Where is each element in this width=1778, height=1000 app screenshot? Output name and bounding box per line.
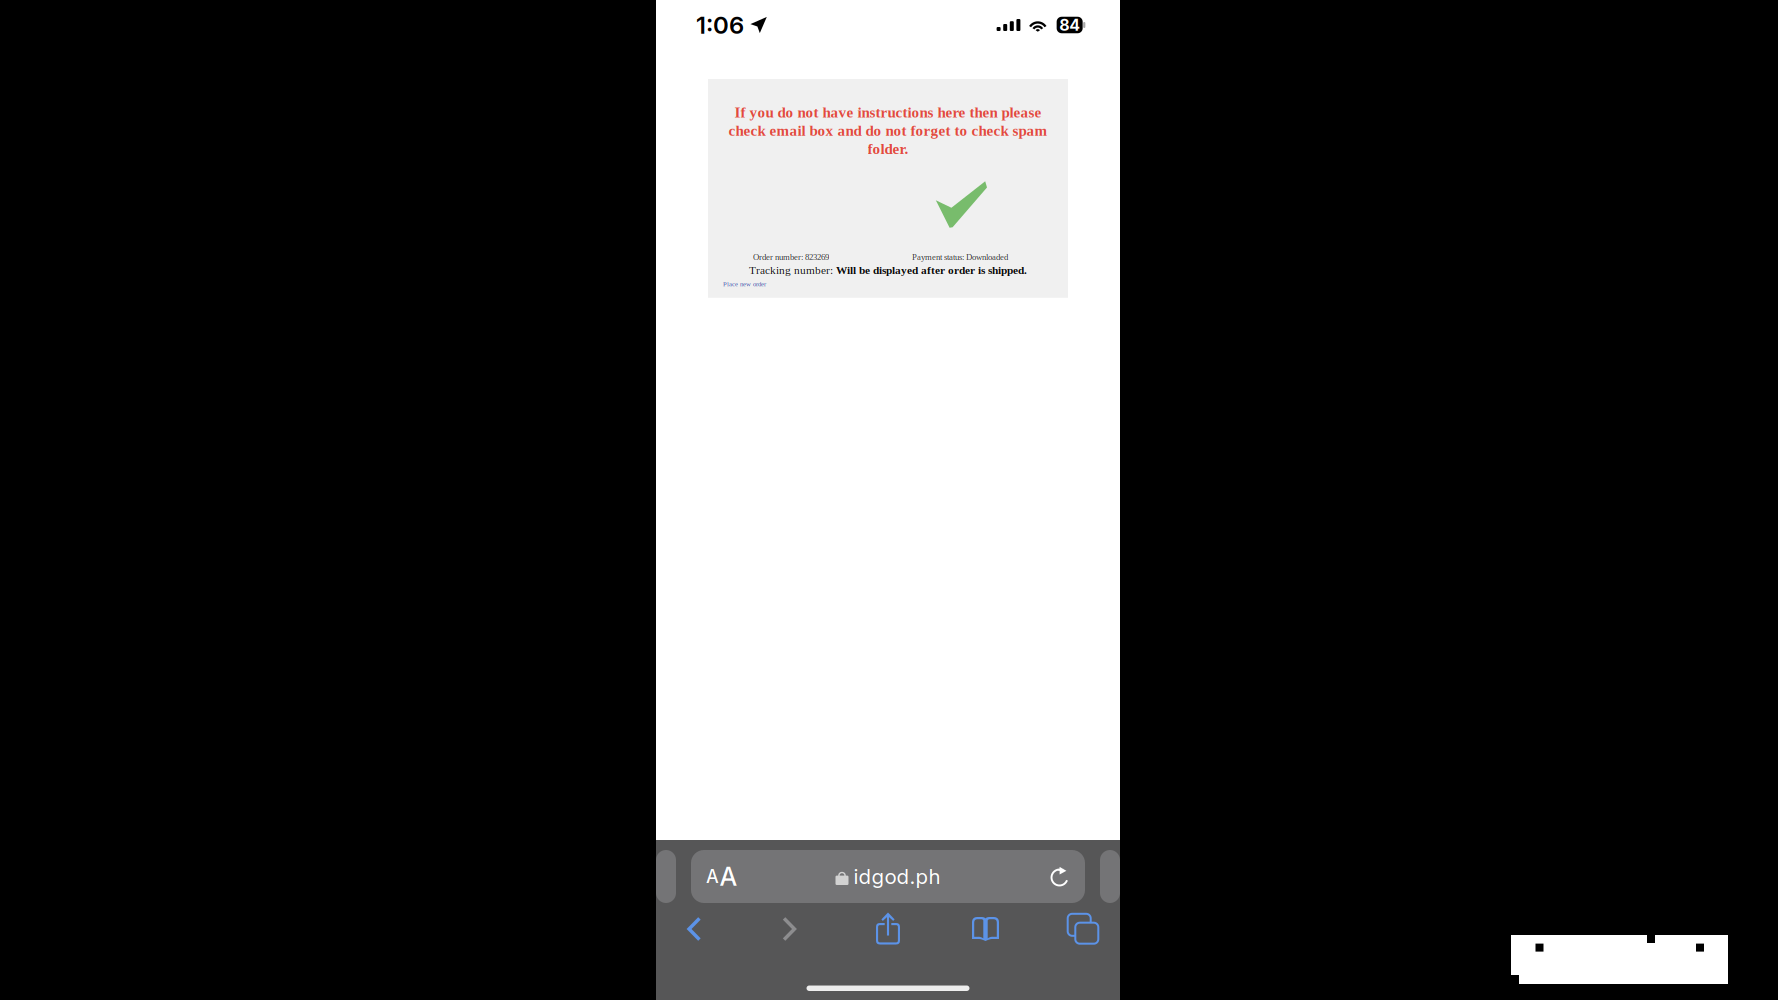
staticText: A	[706, 866, 719, 887]
staticText: folder.	[867, 141, 908, 157]
staticText: 84	[1059, 15, 1080, 35]
staticText: Tracking number:	[749, 264, 836, 276]
button[interactable]: Place new order	[708, 280, 1068, 288]
staticText: A	[719, 861, 737, 892]
button[interactable]: Back	[663, 912, 723, 946]
staticText: Place new order	[723, 280, 766, 288]
staticText: check email box and do not forget to che…	[728, 122, 1047, 139]
button[interactable]: Forward	[760, 912, 820, 946]
staticText: If you do not have instructions here the…	[734, 104, 1041, 121]
button[interactable]: Share	[858, 912, 918, 946]
button[interactable]: A	[691, 850, 1085, 903]
staticText: idgod.ph	[853, 864, 940, 889]
staticText: Payment status: Downloaded	[912, 252, 1008, 262]
button[interactable]: Bookmarks	[955, 912, 1015, 946]
button[interactable]: Tabs	[1053, 912, 1113, 946]
staticText: 1:06	[696, 10, 744, 39]
staticText: Order number: 823269	[753, 252, 829, 262]
staticText: Will be displayed after order is shipped…	[836, 264, 1027, 276]
